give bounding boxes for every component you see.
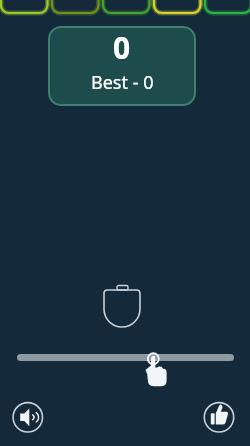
staticText: Best - 0 — [91, 70, 154, 95]
staticText: 0 — [113, 27, 131, 68]
button[interactable]: 0 — [48, 26, 196, 106]
button[interactable] — [17, 354, 234, 361]
button[interactable] — [204, 402, 234, 432]
button[interactable] — [13, 402, 43, 432]
